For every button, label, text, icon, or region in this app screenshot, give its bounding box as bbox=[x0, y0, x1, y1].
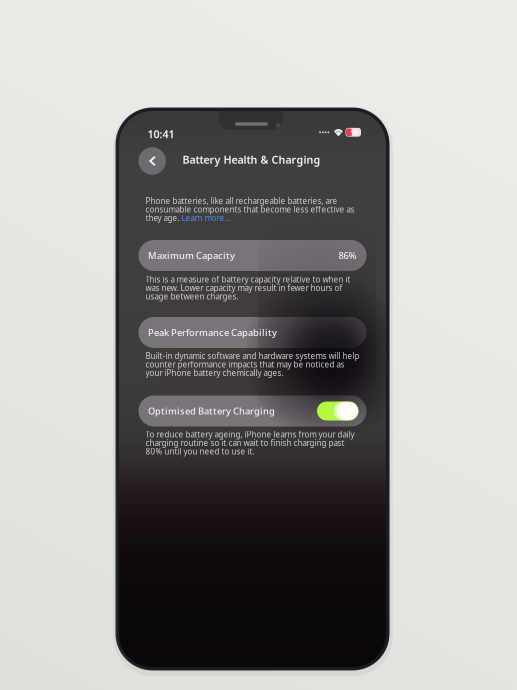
staticText: consumable components that become less e… bbox=[145, 204, 354, 215]
staticText: Maximum Capacity bbox=[148, 249, 235, 262]
button[interactable]: Maximum Capacity bbox=[119, 111, 386, 667]
staticText: 16 bbox=[350, 128, 358, 137]
staticText: 10:41 bbox=[147, 127, 174, 141]
staticText: This is a measure of battery capacity re… bbox=[145, 274, 350, 285]
staticText: charging routine so it can wait to finis… bbox=[145, 438, 344, 448]
staticText: 80% until you need to use it. bbox=[145, 446, 254, 457]
staticText: your iPhone battery chemically ages. bbox=[145, 368, 283, 378]
staticText: Battery Health & Charging bbox=[182, 152, 320, 167]
staticText: Peak Performance Capability bbox=[148, 326, 277, 339]
staticText: Learn more… bbox=[181, 213, 230, 223]
staticText: Built-in dynamic software and hardware s… bbox=[145, 351, 359, 361]
staticText: counter performance impacts that may be … bbox=[145, 359, 344, 370]
button[interactable]: Peak Performance Capability bbox=[119, 111, 386, 667]
staticText: To reduce battery ageing, iPhone learns … bbox=[145, 429, 354, 440]
staticText: Optimised Battery Charging bbox=[148, 405, 275, 417]
button[interactable]: Optimised Battery Charging bbox=[119, 111, 386, 667]
staticText: 86% bbox=[338, 249, 356, 262]
staticText: Phone batteries, like all rechargeable b… bbox=[145, 196, 337, 206]
button[interactable]: Learn more… bbox=[181, 213, 230, 223]
staticText: they age. bbox=[145, 213, 181, 223]
staticText: usage between charges. bbox=[145, 291, 238, 302]
staticText: was new. Lower capacity may result in fe… bbox=[145, 283, 342, 293]
button[interactable]: Back bbox=[138, 147, 166, 175]
